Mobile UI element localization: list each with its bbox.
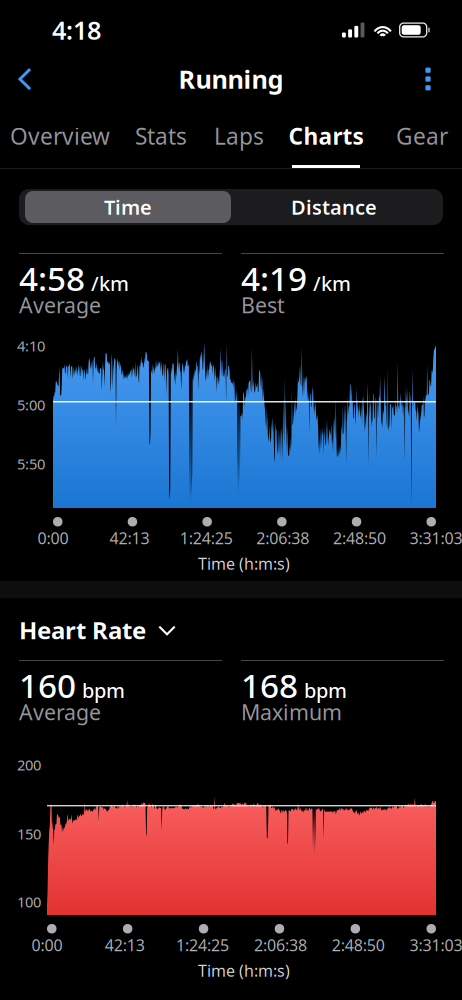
staticText: 1:24:25 [176, 934, 229, 956]
staticText: Time (h:m:s) [198, 960, 290, 981]
staticText: 160 [19, 663, 76, 707]
staticText: 3:31:03 [409, 527, 462, 549]
staticText: 200 [17, 755, 41, 774]
staticText: 2:06:38 [254, 934, 307, 956]
staticText: 5:50 [17, 454, 45, 473]
button[interactable]: Distance [231, 191, 437, 223]
staticText: Best [241, 291, 285, 319]
button[interactable]: Gear [362, 102, 462, 168]
button[interactable]: Heart Rate [19, 614, 279, 646]
staticText: 4:18 [52, 13, 101, 47]
staticText: 5:00 [17, 395, 45, 414]
staticText: 150 [17, 824, 41, 843]
staticText: 42:13 [110, 527, 150, 549]
staticText: 100 [17, 892, 41, 911]
staticText: Gear [396, 121, 448, 151]
staticText: 1:24:25 [180, 527, 233, 549]
button[interactable]: Back [2, 56, 48, 102]
staticText: 4:58 [19, 256, 85, 300]
button[interactable]: Overview [0, 102, 120, 168]
staticText: 4:19 [241, 256, 307, 300]
staticText: 0:00 [31, 934, 62, 956]
staticText: Maximum [241, 698, 342, 726]
staticText: 0:00 [37, 527, 68, 549]
staticText: 2:06:38 [256, 527, 309, 549]
staticText: Running [178, 62, 283, 96]
staticText: Stats [135, 121, 187, 151]
staticText: 2:48:50 [332, 934, 385, 956]
staticText: /km [313, 270, 351, 296]
staticText: 4:10 [17, 336, 45, 355]
staticText: bpm [304, 677, 347, 703]
staticText: Overview [10, 121, 110, 151]
staticText: Average [19, 698, 101, 726]
staticText: 168 [241, 663, 298, 707]
staticText: Laps [214, 121, 264, 151]
button[interactable]: Time [25, 191, 231, 223]
staticText: Heart Rate [19, 614, 146, 646]
staticText: bpm [82, 677, 125, 703]
button[interactable]: Charts [266, 102, 386, 168]
staticText: Distance [291, 194, 377, 220]
staticText: /km [91, 270, 129, 296]
staticText: Time [104, 194, 152, 220]
staticText: Average [19, 291, 101, 319]
staticText: Time (h:m:s) [198, 553, 290, 574]
staticText: 42:13 [105, 934, 145, 956]
button[interactable]: Laps [179, 102, 299, 168]
staticText: 2:48:50 [333, 527, 386, 549]
staticText: Charts [288, 121, 363, 151]
button[interactable]: Stats [101, 102, 221, 168]
button[interactable]: More options [405, 56, 451, 102]
staticText: 3:31:03 [409, 934, 462, 956]
